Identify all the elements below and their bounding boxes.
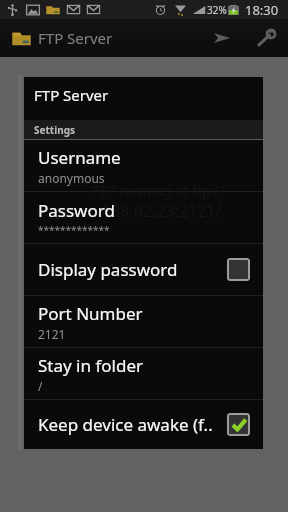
staticText: Settings: [34, 123, 75, 137]
staticText: Stay in folder: [38, 354, 143, 377]
staticText: /: [38, 378, 43, 394]
button[interactable]: Display password: [24, 244, 263, 295]
staticText: Username: [38, 146, 121, 169]
button[interactable]: Settings: [244, 19, 288, 57]
staticText: anonymous: [38, 170, 105, 186]
button[interactable]: Send: [200, 19, 244, 57]
staticText: FTP Server: [38, 28, 113, 48]
staticText: 18:30: [245, 1, 279, 19]
button[interactable]: Username: [24, 140, 263, 191]
button[interactable]: Port Number: [24, 296, 263, 347]
staticText: 2121: [38, 326, 66, 342]
staticText: Keep device awake (f..: [38, 413, 227, 436]
staticText: FTP running at ftp://: [92, 181, 225, 200]
staticText: 32%: [207, 3, 227, 17]
staticText: FTP Server: [34, 85, 109, 105]
button[interactable]: Stay in folder: [24, 348, 263, 399]
staticText: *************: [38, 223, 110, 237]
button[interactable]: Keep device awake (f..: [24, 400, 263, 449]
staticText: 188.62.23:2121/: [102, 200, 222, 222]
staticText: Password: [38, 199, 115, 222]
button[interactable]: Password: [24, 192, 263, 243]
staticText: Port Number: [38, 302, 143, 325]
staticText: Display password: [38, 258, 227, 281]
